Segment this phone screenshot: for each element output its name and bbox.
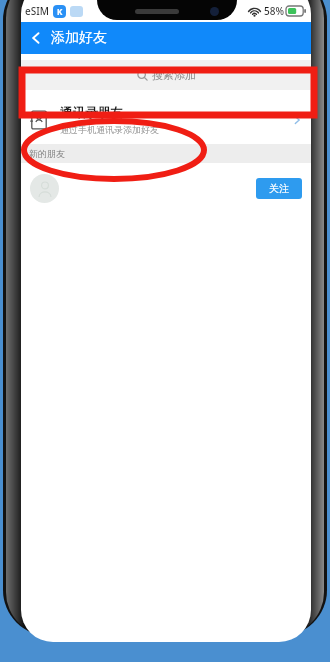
staticText: 通讯录朋友 xyxy=(60,105,123,121)
button[interactable]: 通讯录朋友 xyxy=(21,96,311,144)
staticText: 通过手机通讯录添加好友 xyxy=(60,124,159,135)
staticText: eSIM xyxy=(25,4,49,18)
staticText: 新的朋友 xyxy=(29,148,65,159)
staticText: 搜索添加 xyxy=(152,68,196,82)
button[interactable]: 搜索添加 xyxy=(21,60,311,90)
staticText: 添加好友 xyxy=(51,29,107,47)
button[interactable]: Back xyxy=(21,22,49,54)
staticText: 58% xyxy=(264,4,284,18)
button[interactable]: 关注 xyxy=(21,163,311,213)
staticText: K xyxy=(57,6,63,17)
staticText: 关注 xyxy=(269,182,289,195)
button[interactable]: 关注 xyxy=(256,178,302,199)
